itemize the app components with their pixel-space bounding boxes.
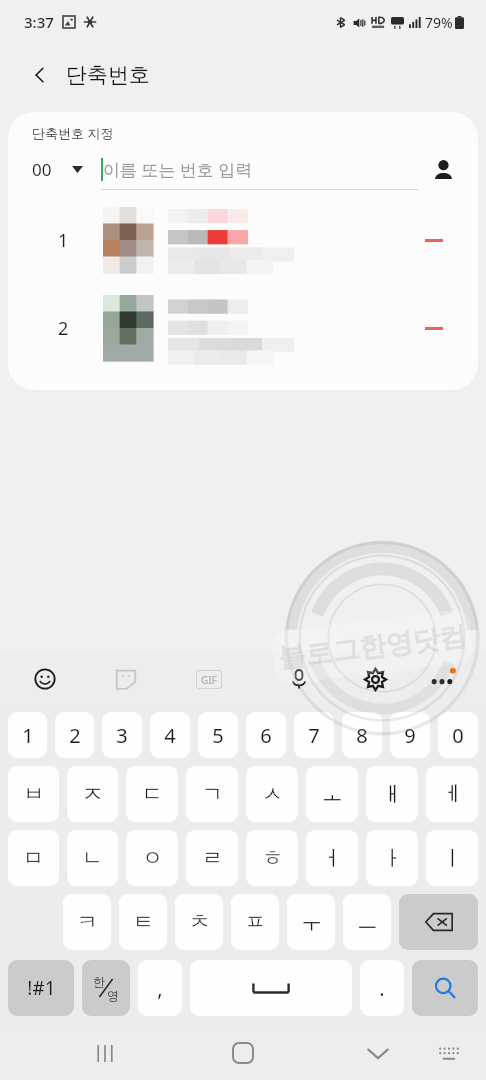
staticText: ㅓ — [322, 845, 343, 871]
button[interactable]: ㅎ — [246, 830, 298, 886]
button[interactable]: ㅔ — [426, 766, 478, 822]
button[interactable]: Home — [220, 1030, 266, 1076]
button[interactable]: Stickers — [107, 660, 145, 698]
staticText: 0 — [452, 722, 464, 749]
button[interactable]: ㅇ — [126, 830, 178, 886]
button[interactable]: 2 — [8, 284, 478, 372]
button[interactable]: ㄴ — [67, 830, 118, 886]
button[interactable]: , — [138, 960, 182, 1016]
staticText: 00 — [32, 158, 52, 181]
button[interactable]: ㅌ — [119, 894, 167, 950]
button[interactable]: . — [360, 960, 404, 1016]
button[interactable]: ㅏ — [366, 830, 418, 886]
staticText: ㅁ — [23, 845, 44, 871]
button[interactable]: ㅐ — [366, 766, 418, 822]
button[interactable]: Space — [190, 960, 352, 1016]
button[interactable]: 6 — [246, 712, 286, 758]
staticText: ㅏ — [382, 845, 403, 871]
button[interactable]: ㅜ — [287, 894, 335, 950]
staticText: ㅋ — [77, 909, 98, 935]
button[interactable]: 4 — [150, 712, 190, 758]
button[interactable]: 00 — [24, 152, 91, 187]
button[interactable]: ㅗ — [306, 766, 358, 822]
staticText: ㅂ — [23, 781, 44, 807]
staticText: GIF — [201, 673, 218, 687]
staticText: ㅇ — [142, 845, 163, 871]
staticText: 2 — [58, 316, 69, 341]
staticText: ㅗ — [322, 781, 343, 807]
button[interactable]: Remove — [416, 310, 452, 346]
staticText: ㅎ — [262, 845, 283, 871]
button[interactable]: ㄷ — [126, 766, 178, 822]
staticText: ㅣ — [442, 845, 463, 871]
staticText: ㅐ — [382, 781, 403, 807]
button[interactable]: Keyboard settings — [355, 659, 395, 699]
staticText: ㅌ — [133, 909, 154, 935]
button[interactable]: 7 — [294, 712, 334, 758]
button[interactable]: ㅈ — [67, 766, 118, 822]
button[interactable]: Korean English toggle — [82, 960, 130, 1016]
staticText: 1 — [58, 228, 69, 253]
button[interactable]: Voice input — [280, 660, 318, 698]
staticText: 단축번호 — [66, 62, 150, 88]
staticText: 한 — [93, 974, 105, 989]
staticText: 블로그한영닷컴 — [277, 618, 468, 675]
button[interactable]: 8 — [342, 712, 382, 758]
button[interactable]: ㄹ — [186, 830, 238, 886]
staticText: ㅈ — [82, 781, 103, 807]
button[interactable]: Recents — [83, 1031, 127, 1075]
staticText: 7 — [308, 722, 320, 749]
button[interactable]: Hide keyboard — [356, 1031, 400, 1075]
button[interactable]: ㅊ — [175, 894, 223, 950]
button[interactable]: 1 — [8, 196, 478, 284]
staticText: 3:37 — [24, 12, 54, 32]
button[interactable]: 1 — [8, 712, 47, 758]
staticText: ㄱ — [202, 781, 223, 807]
button[interactable]: ㅅ — [246, 766, 298, 822]
staticText: 4 — [164, 722, 176, 749]
staticText: ㄷ — [142, 781, 163, 807]
button[interactable]: ㅁ — [8, 830, 59, 886]
button[interactable]: ㅂ — [8, 766, 59, 822]
staticText: 8 — [356, 722, 368, 749]
button[interactable]: ㅣ — [426, 830, 478, 886]
button[interactable]: Keyboard — [428, 1032, 470, 1074]
staticText: 이름 또는 번호 입력 — [103, 158, 253, 181]
staticText: ㅜ — [301, 909, 322, 935]
staticText: ㅅ — [262, 781, 283, 807]
staticText: ㄴ — [82, 845, 103, 871]
button[interactable]: 5 — [198, 712, 238, 758]
button[interactable]: 0 — [438, 712, 478, 758]
staticText: , — [157, 975, 163, 1002]
button[interactable]: Remove — [416, 222, 452, 258]
staticText: 79% — [425, 13, 453, 32]
staticText: 9 — [404, 722, 416, 749]
staticText: 2 — [69, 722, 81, 749]
button[interactable]: ㅓ — [306, 830, 358, 886]
staticText: ㅍ — [245, 909, 266, 935]
button[interactable]: ㄱ — [186, 766, 238, 822]
button[interactable]: GIF — [189, 659, 229, 699]
button[interactable]: Emoji — [26, 660, 64, 698]
staticText: 3 — [116, 722, 128, 749]
button[interactable]: ㅍ — [231, 894, 279, 950]
button[interactable]: More options — [420, 657, 464, 701]
staticText: !#1 — [27, 975, 56, 1001]
staticText: 5 — [212, 722, 224, 749]
button[interactable]: Pick contact — [426, 152, 460, 186]
button[interactable]: !#1 — [8, 960, 74, 1016]
button[interactable]: Back — [20, 55, 60, 95]
button[interactable]: 3 — [102, 712, 142, 758]
button[interactable]: Search — [412, 960, 478, 1016]
staticText: 영 — [107, 988, 119, 1003]
staticText: 6 — [260, 722, 272, 749]
button[interactable]: ㅡ — [343, 894, 391, 950]
button[interactable]: ㅋ — [63, 894, 111, 950]
staticText: 단축번호 지정 — [32, 124, 114, 142]
staticText: . — [379, 975, 385, 1002]
button[interactable]: 2 — [55, 712, 94, 758]
button[interactable]: Backspace — [399, 894, 478, 950]
staticText: ㅡ — [357, 909, 378, 935]
button[interactable]: 9 — [390, 712, 430, 758]
staticText: ㅊ — [189, 909, 210, 935]
